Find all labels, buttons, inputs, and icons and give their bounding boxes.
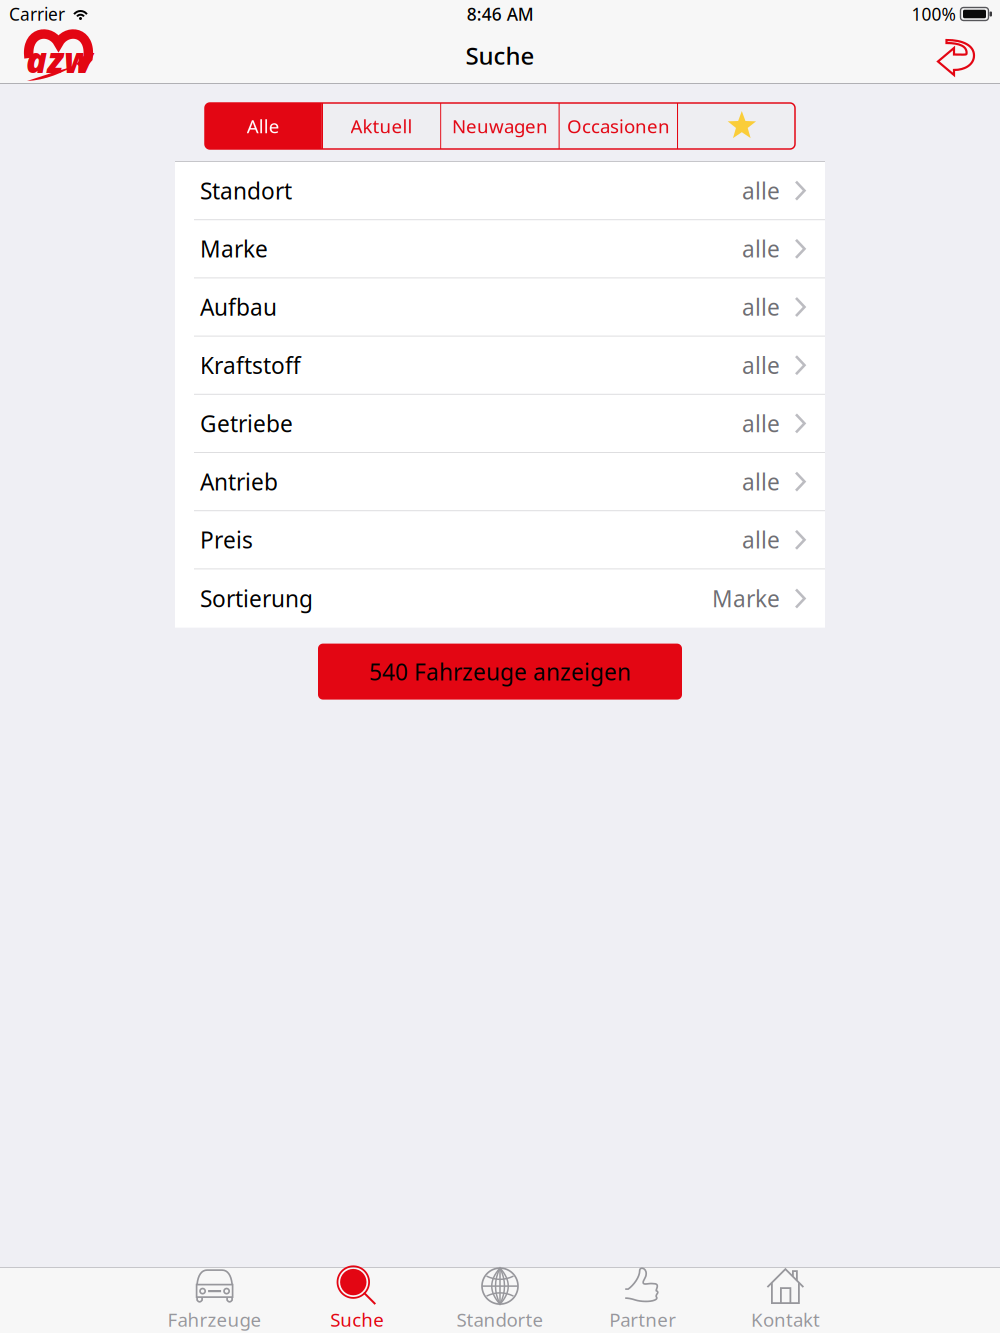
staticText: Aktuell bbox=[351, 114, 413, 138]
staticText: alle bbox=[742, 292, 780, 322]
button[interactable]: Kontakt bbox=[714, 1268, 857, 1333]
staticText: Carrier bbox=[9, 2, 65, 25]
button[interactable]: Standorte bbox=[429, 1268, 571, 1333]
staticText: Antrieb bbox=[200, 466, 278, 497]
staticText: Occasionen bbox=[567, 114, 670, 138]
staticText: Neuwagen bbox=[452, 114, 548, 138]
staticText: alle bbox=[742, 234, 780, 264]
staticText: azw bbox=[26, 36, 93, 82]
staticText: alle bbox=[742, 175, 780, 206]
button[interactable]: Favoriten bbox=[678, 103, 795, 149]
button[interactable]: Marke bbox=[175, 220, 825, 278]
staticText: Aufbau bbox=[200, 292, 277, 322]
staticText: 540 Fahrzeuge anzeigen bbox=[369, 656, 631, 687]
staticText: Sortierung bbox=[200, 583, 313, 613]
button[interactable]: Fahrzeuge bbox=[143, 1268, 286, 1333]
staticText: Marke bbox=[200, 234, 268, 264]
staticText: Standort bbox=[200, 175, 292, 206]
staticText: alle bbox=[742, 408, 780, 438]
staticText: Suche bbox=[465, 40, 534, 71]
button[interactable]: Kraftstoff bbox=[175, 337, 825, 395]
staticText: alle bbox=[742, 350, 780, 380]
button[interactable]: Antrieb bbox=[175, 453, 825, 511]
staticText: alle bbox=[742, 525, 780, 555]
staticText: Kontakt bbox=[751, 1307, 820, 1332]
staticText: 8:46 AM bbox=[467, 2, 534, 25]
button[interactable]: Preis bbox=[175, 511, 825, 569]
staticText: alle bbox=[742, 466, 780, 497]
button[interactable]: 540 Fahrzeuge anzeigen bbox=[318, 644, 682, 700]
staticText: Getriebe bbox=[200, 408, 293, 438]
button[interactable]: Neuwagen bbox=[441, 103, 559, 149]
staticText: 100% bbox=[911, 2, 955, 25]
button[interactable]: Alle bbox=[205, 103, 322, 149]
button[interactable]: Occasionen bbox=[560, 103, 677, 149]
button[interactable]: Suche bbox=[286, 1268, 429, 1333]
button[interactable]: Standort bbox=[175, 162, 825, 220]
button[interactable]: Getriebe bbox=[175, 395, 825, 453]
button[interactable]: Sortierung bbox=[175, 569, 825, 628]
staticText: Alle bbox=[247, 114, 280, 138]
button[interactable]: Partner bbox=[571, 1268, 714, 1333]
button[interactable]: Aktuell bbox=[323, 103, 440, 149]
button[interactable]: Aufbau bbox=[175, 278, 825, 337]
staticText: Suche bbox=[330, 1307, 384, 1332]
staticText: Fahrzeuge bbox=[168, 1307, 262, 1332]
button[interactable]: Filter zurücksetzen bbox=[935, 33, 1000, 77]
staticText: Marke bbox=[712, 583, 780, 613]
staticText: Preis bbox=[200, 525, 253, 555]
staticText: Partner bbox=[609, 1307, 676, 1332]
staticText: Kraftstoff bbox=[200, 350, 301, 380]
staticText: Standorte bbox=[456, 1307, 543, 1332]
